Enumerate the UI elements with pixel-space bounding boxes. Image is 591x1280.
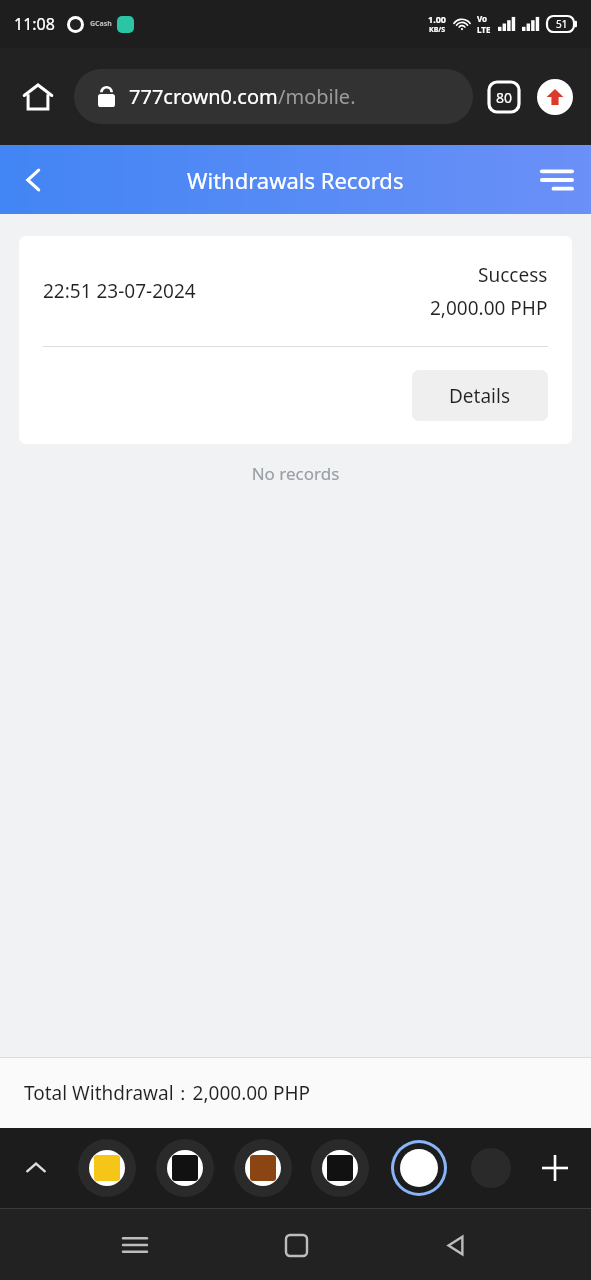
button[interactable]: Tab <box>234 1139 292 1197</box>
button[interactable]: 777crown0.com <box>74 69 473 124</box>
staticText: KB/S <box>429 25 446 35</box>
button[interactable]: Back <box>430 1219 482 1271</box>
button[interactable]: Home <box>270 1219 322 1271</box>
button[interactable]: Recents <box>109 1219 161 1271</box>
staticText: 80 <box>496 88 513 107</box>
button[interactable]: Back <box>10 156 58 204</box>
button[interactable]: Tab <box>78 1139 136 1197</box>
staticText: 22:51 23-07-2024 <box>43 278 196 304</box>
button[interactable]: Tab <box>156 1139 214 1197</box>
staticText: Total Withdrawal：2,000.00 PHP <box>24 1080 310 1106</box>
button[interactable]: Home <box>18 77 58 117</box>
button[interactable]: Menu <box>533 156 581 204</box>
staticText: 11:08 <box>14 13 55 35</box>
staticText: No records <box>0 462 591 485</box>
staticText: 2,000.00 PHP <box>430 295 548 321</box>
button[interactable]: New tab <box>533 1146 577 1190</box>
staticText: Details <box>449 383 511 409</box>
staticText: Vo <box>477 13 488 24</box>
staticText: GCash <box>90 19 112 29</box>
staticText: Withdrawals Records <box>187 165 404 195</box>
button[interactable]: Upload <box>537 79 573 115</box>
button[interactable]: Current tab <box>391 1140 447 1196</box>
button[interactable]: Details <box>412 370 548 421</box>
staticText: Success <box>478 262 548 288</box>
button[interactable]: Expand <box>14 1146 58 1190</box>
staticText: 777crown0.com <box>129 83 278 110</box>
button[interactable]: Tabs <box>487 80 521 114</box>
staticText: LTE <box>477 24 491 35</box>
button[interactable]: Tab <box>311 1139 369 1197</box>
staticText: /mobile. <box>278 83 356 110</box>
staticText: 51 <box>556 17 568 31</box>
staticText: 1.00 <box>428 13 446 25</box>
